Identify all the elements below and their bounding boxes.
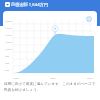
- staticText: 目標に向けて着実に進んでいます。このままのペースで投資を続けましょう。: [4, 82, 96, 92]
- staticText: 2044: [87, 76, 93, 79]
- staticText: 1,000: [5, 47, 12, 50]
- staticText: 2034: [50, 76, 56, 79]
- button[interactable]: 目標金額 1,644万円: [5, 0, 100, 9]
- staticText: 500: [5, 61, 10, 64]
- button[interactable]: Info: [86, 16, 92, 22]
- staticText: 目標金額 1,644万円: [11, 2, 48, 8]
- staticText: 250: [5, 68, 10, 71]
- staticText: 2024: [13, 76, 19, 79]
- button[interactable]: 2,000: [3, 11, 97, 81]
- staticText: 1,250: [5, 40, 12, 43]
- staticText: 1,750: [5, 26, 12, 29]
- staticText: 1,500: [5, 33, 12, 36]
- staticText: 750: [5, 54, 10, 57]
- staticText: 2,000: [5, 19, 12, 22]
